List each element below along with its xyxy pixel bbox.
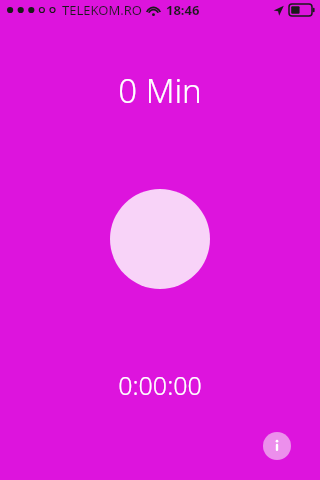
button[interactable]: Start or stop timer xyxy=(110,189,210,289)
button[interactable]: Info xyxy=(263,432,291,460)
staticText: 0 Min xyxy=(0,68,320,113)
staticText: TELEKOM.RO xyxy=(62,1,142,19)
staticText: 0:00:00 xyxy=(0,368,320,402)
staticText: 18:46 xyxy=(166,1,200,19)
